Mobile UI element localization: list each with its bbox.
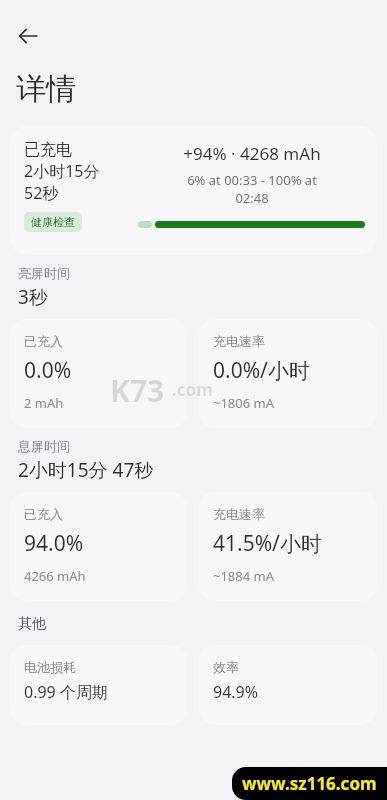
staticText: 其他 — [18, 615, 46, 633]
staticText: 41.5%/小时 — [213, 529, 322, 558]
staticText: 息屏时间 — [18, 438, 70, 454]
staticText: 0.0%/小时 — [213, 356, 310, 385]
staticText: 充电速率 — [213, 506, 265, 522]
staticText: +94% · 4268 mAh — [183, 142, 321, 165]
staticText: 详情 — [16, 70, 76, 108]
staticText: www.sz116.com — [242, 772, 377, 795]
button[interactable]: 健康检查 — [24, 212, 82, 232]
staticText: 2 mAh — [24, 394, 64, 412]
staticText: 94.9% — [213, 681, 259, 703]
button[interactable]: 已充入 — [10, 492, 187, 601]
staticText: ~1884 mA — [213, 567, 275, 585]
button[interactable]: 充电速率 — [199, 319, 377, 428]
staticText: 电池损耗 — [24, 659, 76, 675]
button[interactable]: 已充电 — [10, 126, 377, 255]
button[interactable]: 已充入 — [10, 319, 187, 428]
staticText: 0.99 个周期 — [24, 681, 108, 703]
staticText: 效率 — [213, 659, 239, 675]
staticText: K73 — [110, 370, 165, 411]
button[interactable]: 效率 — [199, 645, 377, 725]
staticText: 52秒 — [24, 182, 59, 204]
staticText: .com — [172, 378, 213, 401]
staticText: 2小时15分 — [24, 160, 100, 182]
staticText: 已充入 — [24, 333, 63, 349]
staticText: 健康检查 — [31, 215, 75, 229]
staticText: 94.0% — [24, 529, 84, 558]
staticText: 4266 mAh — [24, 567, 86, 585]
staticText: 6% at 00:33 - 100% at 02:48 — [187, 171, 317, 207]
staticText: ~1806 mA — [213, 394, 275, 412]
staticText: 2小时15分 47秒 — [18, 457, 154, 483]
button[interactable]: Back — [6, 14, 50, 58]
staticText: 亮屏时间 — [18, 265, 70, 281]
staticText: 充电速率 — [213, 333, 265, 349]
staticText: 3秒 — [18, 284, 48, 310]
staticText: 已充电 — [24, 140, 72, 160]
staticText: 已充入 — [24, 506, 63, 522]
staticText: 0.0% — [24, 356, 72, 385]
button[interactable]: 电池损耗 — [10, 645, 187, 725]
button[interactable]: 充电速率 — [199, 492, 377, 601]
